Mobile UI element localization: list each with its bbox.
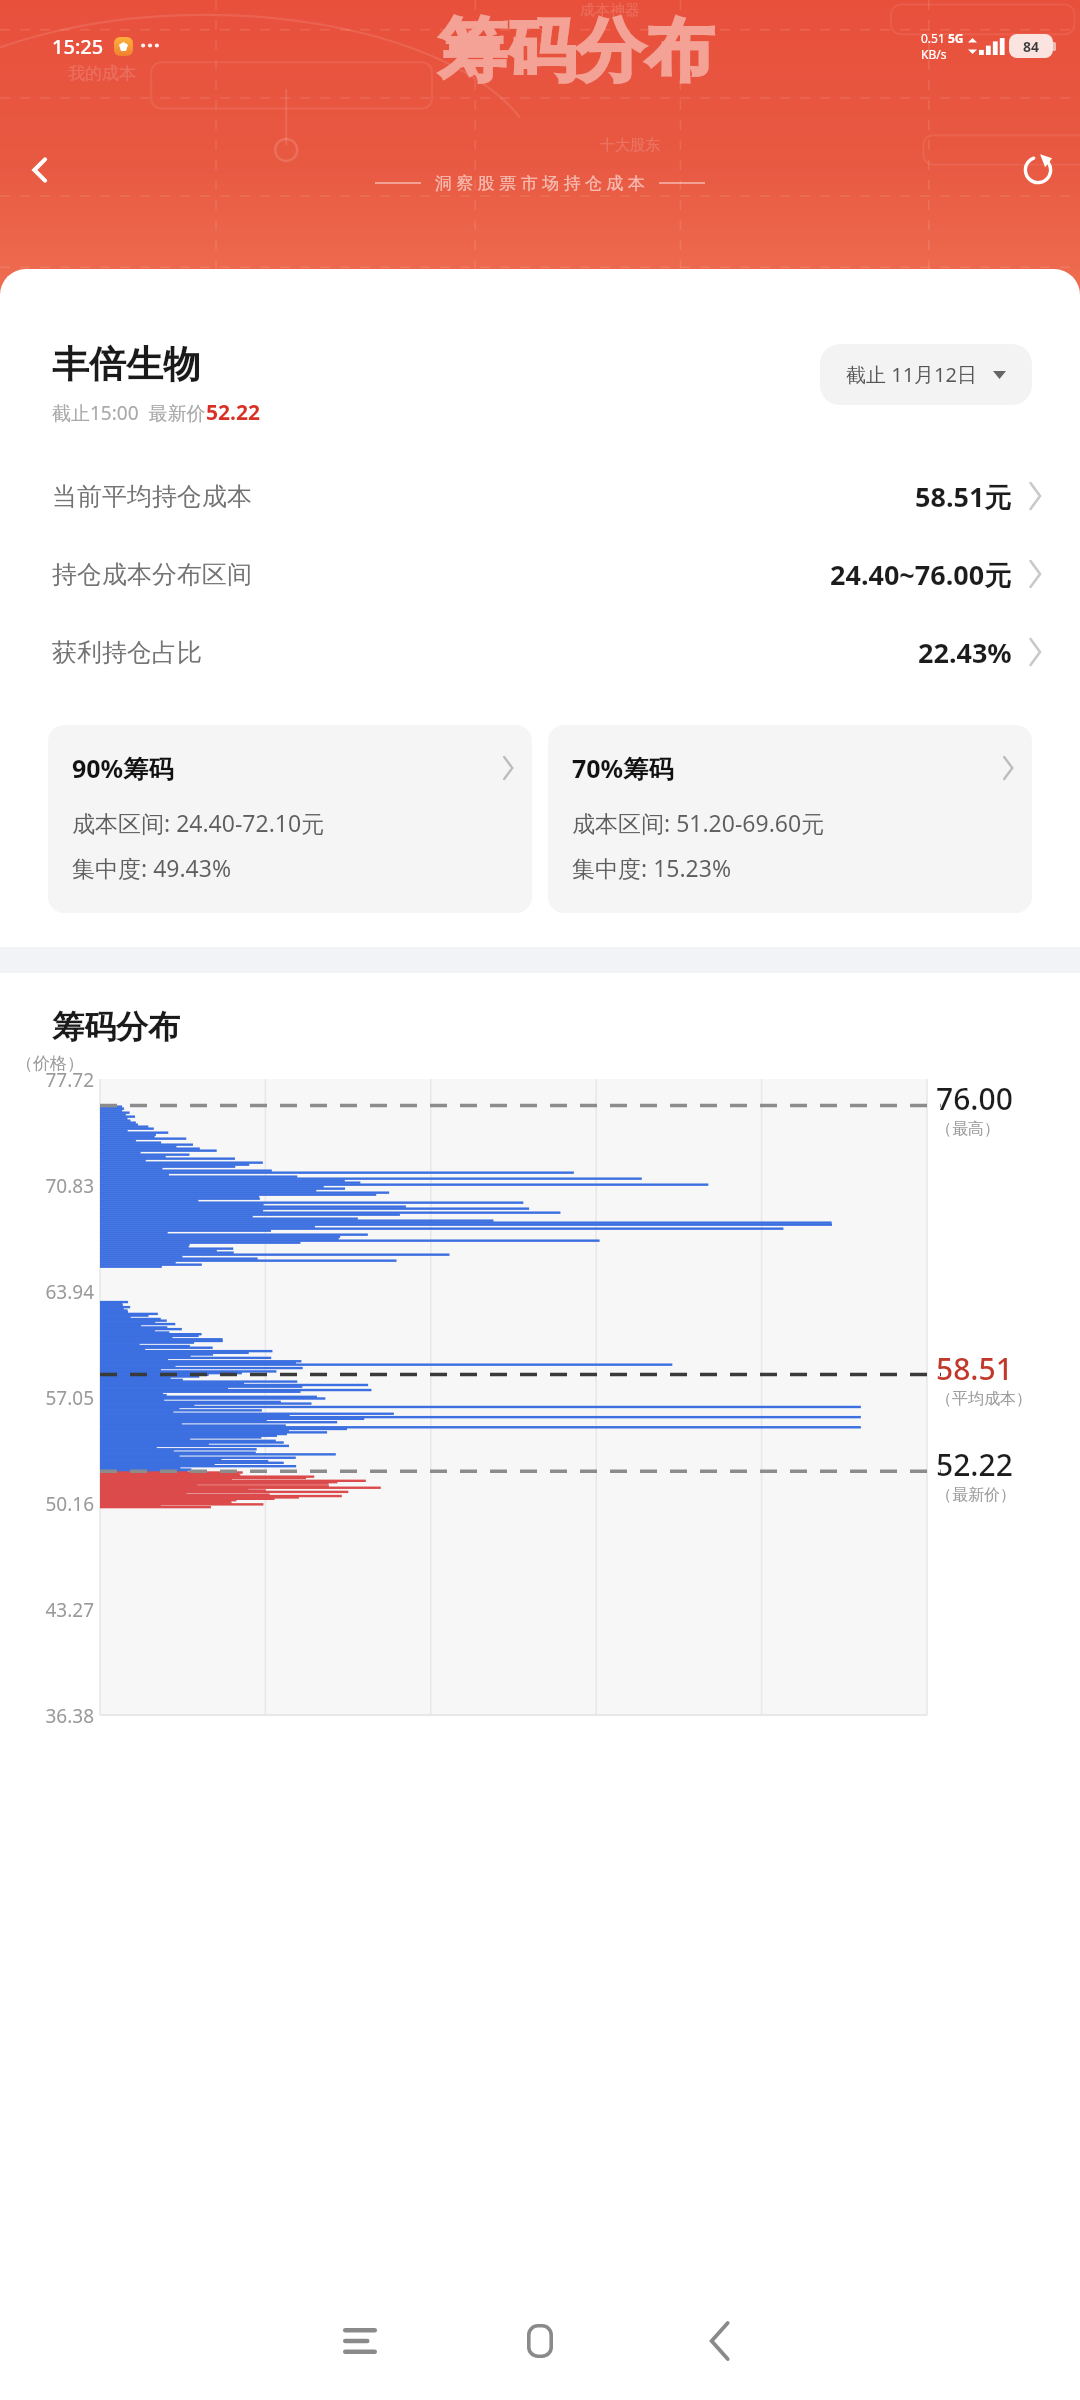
staticText: 成本区间: 24.40-72.10元	[72, 807, 325, 838]
staticText: 洞 察 股 票 市 场 持 仓 成 本	[435, 171, 645, 194]
staticText: KB/s	[921, 46, 947, 62]
button[interactable]: 持仓成本分布区间	[0, 535, 1080, 613]
staticText: 集中度: 49.43%	[72, 852, 232, 883]
staticText: （平均成本）	[936, 1389, 1032, 1409]
staticText: 52.22	[936, 1444, 1013, 1485]
staticText: 我的成本	[68, 63, 136, 84]
staticText: 获利持仓占比	[52, 637, 202, 668]
staticText: 43.27	[18, 1597, 94, 1623]
staticText: 70%筹码	[572, 751, 674, 785]
staticText: 成本神器	[580, 1, 640, 20]
staticText: 0.51	[921, 30, 948, 46]
staticText: 63.94	[18, 1279, 94, 1305]
button[interactable]: 获利持仓占比	[0, 613, 1080, 691]
staticText: 15:25	[52, 33, 104, 60]
staticText: 57.05	[18, 1385, 94, 1411]
button[interactable]: 返回	[12, 142, 68, 198]
staticText: 22.43%	[918, 634, 1012, 671]
staticText: 持仓成本分布区间	[52, 559, 252, 590]
button[interactable]: 刷新	[1010, 142, 1066, 198]
button[interactable]: 当前平均持仓成本	[0, 457, 1080, 535]
staticText: 筹码分布	[52, 1007, 180, 1047]
staticText: 58.51元	[915, 478, 1012, 515]
button[interactable]: 返回	[630, 2282, 810, 2400]
staticText: 24.40~76.00元	[830, 556, 1012, 593]
button[interactable]: 70%筹码	[548, 725, 1032, 913]
staticText: 77.72	[18, 1067, 94, 1093]
staticText: 50.16	[18, 1491, 94, 1517]
staticText: 84	[1023, 37, 1040, 56]
staticText: （价格）	[16, 1053, 84, 1074]
staticText: 丰倍生物	[52, 341, 200, 388]
staticText: 集中度: 15.23%	[572, 852, 732, 883]
staticText: 5G	[948, 30, 964, 46]
staticText: 截止 11月12日	[846, 361, 977, 388]
staticText: 52.22	[206, 398, 260, 427]
staticText: （最新价）	[936, 1485, 1016, 1505]
button[interactable]: 90%筹码	[48, 725, 532, 913]
button[interactable]: 最近任务	[270, 2282, 450, 2400]
staticText: 76.00	[936, 1078, 1013, 1119]
staticText: 58.51	[936, 1348, 1013, 1389]
staticText: （最高）	[936, 1119, 1000, 1139]
button[interactable]: 主屏幕	[450, 2282, 630, 2400]
staticText: 70.83	[18, 1173, 94, 1199]
staticText: 截止15:00 最新价	[52, 400, 206, 426]
staticText: 筹码分布	[438, 9, 714, 95]
staticText: 90%筹码	[72, 751, 174, 785]
staticText: 36.38	[18, 1703, 94, 1729]
staticText: 当前平均持仓成本	[52, 481, 252, 512]
staticText: 成本区间: 51.20-69.60元	[572, 807, 825, 838]
staticText: 十大股东	[600, 136, 660, 155]
button[interactable]: 截止 11月12日	[820, 344, 1032, 405]
